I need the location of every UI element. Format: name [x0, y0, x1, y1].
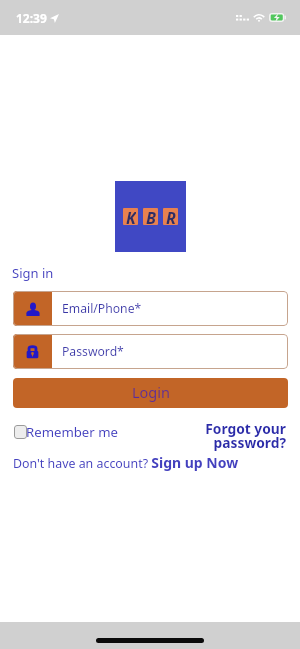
button[interactable]: Remember me	[14, 423, 119, 441]
staticText: Sign in	[12, 264, 54, 282]
staticText: Email/Phone*	[62, 300, 142, 317]
staticText: Password*	[62, 343, 124, 360]
staticText: Login	[132, 382, 170, 402]
button[interactable]: User	[13, 291, 288, 326]
staticText: B	[146, 208, 156, 224]
staticText: Remember me	[26, 423, 118, 441]
staticText: Don't have an account? Sign up Now	[13, 453, 239, 472]
button[interactable]: Password	[13, 334, 288, 369]
staticText: R	[166, 208, 176, 224]
staticText: K	[126, 208, 136, 224]
other: User	[26, 302, 40, 316]
button[interactable]: Forgot your password?	[186, 419, 286, 452]
button[interactable]: Login	[13, 378, 288, 408]
staticText: 12:39	[16, 10, 47, 26]
staticText: Forgot your password?	[186, 419, 286, 452]
other: Password	[26, 345, 39, 359]
button[interactable]: Don't have an account? Sign up Now	[13, 453, 239, 472]
